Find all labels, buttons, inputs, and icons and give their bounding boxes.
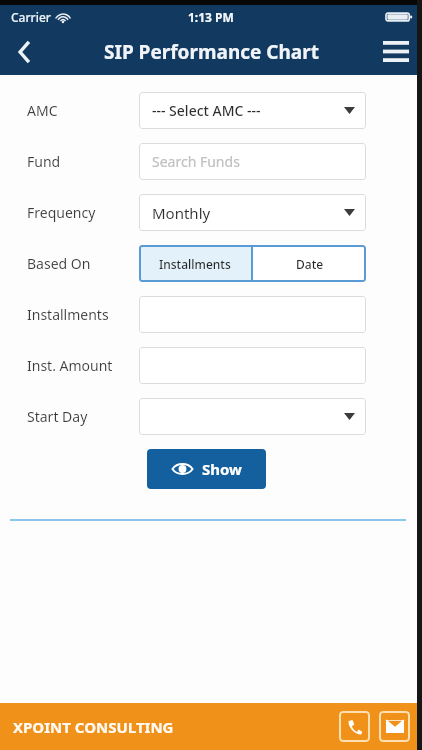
button[interactable]: Monthly [139,194,366,231]
staticText: Installments [27,305,109,324]
button[interactable] [139,398,366,435]
staticText: Installments [159,256,231,272]
button[interactable]: Date [253,245,366,282]
button[interactable] [139,296,366,333]
staticText: Monthly [152,203,211,223]
staticText: Fund [27,152,61,171]
button[interactable]: Call [339,711,370,742]
staticText: Frequency [27,203,96,222]
button[interactable]: Search Funds [139,143,366,180]
staticText: AMC [27,101,58,120]
staticText: Show [202,459,242,479]
button[interactable]: Menu [370,28,422,75]
button[interactable]: --- Select AMC --- [139,92,366,129]
staticText: XPOINT CONSULTING [13,717,174,737]
button[interactable]: Back [0,28,48,75]
staticText: SIP Performance Chart [104,39,319,65]
staticText: Based On [27,254,91,273]
staticText: Inst. Amount [27,356,113,375]
staticText: --- Select AMC --- [152,101,261,120]
button[interactable]: Installments [139,245,251,282]
button[interactable] [139,347,366,384]
staticText: 1:13 PM [188,9,234,25]
staticText: Date [296,256,324,272]
staticText: Start Day [27,407,88,426]
button[interactable]: Show [147,449,266,489]
staticText: Search Funds [152,152,240,171]
button[interactable]: Email [379,711,410,742]
staticText: Carrier [11,9,51,25]
